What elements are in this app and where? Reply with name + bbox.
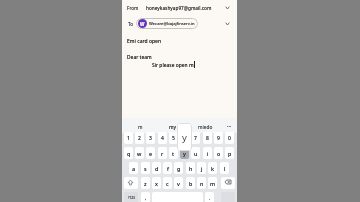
staticText: 5 [172, 135, 175, 142]
staticText: , [145, 195, 147, 202]
staticText: , [145, 195, 147, 202]
button[interactable]: 0 [225, 132, 234, 144]
button[interactable]: j [197, 162, 206, 174]
staticText: z [144, 180, 147, 187]
button[interactable]: z [141, 177, 150, 189]
button[interactable]: g [174, 162, 183, 174]
staticText: a [132, 165, 136, 172]
staticText: h [189, 165, 193, 172]
staticText: 7 [194, 135, 197, 142]
button[interactable]: y [180, 147, 189, 159]
staticText: y [182, 131, 187, 144]
button[interactable]: 8 [203, 132, 212, 144]
staticText: To [128, 21, 134, 27]
button[interactable]: r [158, 147, 167, 159]
button[interactable]: , [141, 192, 150, 202]
staticText: 3 [149, 135, 152, 142]
staticText: w [137, 150, 142, 157]
staticText: f [167, 165, 169, 172]
button[interactable] [221, 177, 235, 189]
staticText: ... [227, 122, 232, 129]
button[interactable]: u [191, 147, 200, 159]
staticText: p [228, 150, 232, 157]
staticText: ?123 [128, 196, 135, 200]
staticText: Sir please open m [152, 62, 194, 69]
staticText: k [211, 165, 215, 172]
button[interactable]: a [129, 162, 138, 174]
staticText: y [183, 150, 186, 157]
staticText: a [132, 165, 136, 172]
button[interactable]: n [197, 177, 206, 189]
button[interactable]: 3 [146, 132, 155, 144]
button[interactable]: 2 [135, 132, 144, 144]
button[interactable]: b [186, 177, 195, 189]
button[interactable] [124, 177, 138, 189]
button[interactable]: d [152, 162, 161, 174]
staticText: n [200, 180, 204, 187]
button[interactable]: f [163, 162, 172, 174]
button[interactable]: c [163, 177, 172, 189]
staticText: 0 [228, 135, 231, 142]
button[interactable]: l [220, 162, 229, 174]
button[interactable]: t [169, 147, 178, 159]
staticText: c [166, 180, 169, 187]
staticText: my [169, 124, 177, 131]
staticText: u [194, 150, 198, 157]
staticText: ?123 [128, 196, 135, 200]
button[interactable]: m [208, 177, 217, 189]
staticText: 1 [127, 135, 130, 142]
staticText: u [194, 150, 198, 157]
button[interactable]: . [205, 192, 214, 202]
button[interactable]: o [214, 147, 223, 159]
button[interactable] [136, 18, 198, 29]
button[interactable]: 6 [180, 132, 189, 144]
staticText: s [144, 165, 147, 172]
staticText: m [138, 124, 143, 131]
button[interactable]: 7 [191, 132, 200, 144]
staticText: g [177, 165, 181, 172]
staticText: r [161, 150, 164, 157]
staticText: Dear team [127, 54, 152, 61]
button[interactable]: 4 [158, 132, 167, 144]
button[interactable]: x [152, 177, 161, 189]
button[interactable]: s [141, 162, 150, 174]
staticText: Dear team [127, 54, 152, 61]
staticText: x [155, 180, 158, 187]
staticText: . [209, 195, 211, 202]
button[interactable]: 5 [169, 132, 178, 144]
button[interactable]: 1 [124, 132, 133, 144]
button[interactable]: h [186, 162, 195, 174]
staticText: b [189, 180, 193, 187]
button[interactable]: w [135, 147, 144, 159]
button[interactable]: e [146, 147, 155, 159]
staticText: c [166, 180, 169, 187]
staticText: j [201, 165, 203, 172]
staticText: . [209, 195, 211, 202]
button[interactable]: i [203, 147, 212, 159]
staticText: o [217, 150, 221, 157]
staticText: v [177, 180, 180, 187]
staticText: To [128, 21, 134, 27]
button[interactable]: k [208, 162, 217, 174]
staticText: o [217, 150, 221, 157]
staticText: n [200, 180, 204, 187]
button[interactable]: p [225, 147, 234, 159]
staticText: Wecare@bajajfinserv.in [149, 21, 195, 27]
staticText: my [169, 124, 177, 131]
staticText: y [183, 150, 186, 157]
staticText: 9 [217, 135, 220, 142]
staticText: From [127, 5, 139, 11]
staticText: b [189, 180, 193, 187]
button[interactable]: 9 [214, 132, 223, 144]
staticText: 2 [138, 135, 141, 142]
staticText: miedo [198, 124, 213, 131]
button[interactable]: ?123 [124, 192, 138, 202]
button[interactable]: v [174, 177, 183, 189]
staticText: 4 [161, 135, 164, 142]
staticText: f [167, 165, 169, 172]
staticText: honeykashyap97@gmail.com [146, 5, 212, 11]
staticText: v [177, 180, 180, 187]
button[interactable]: q [124, 147, 133, 159]
